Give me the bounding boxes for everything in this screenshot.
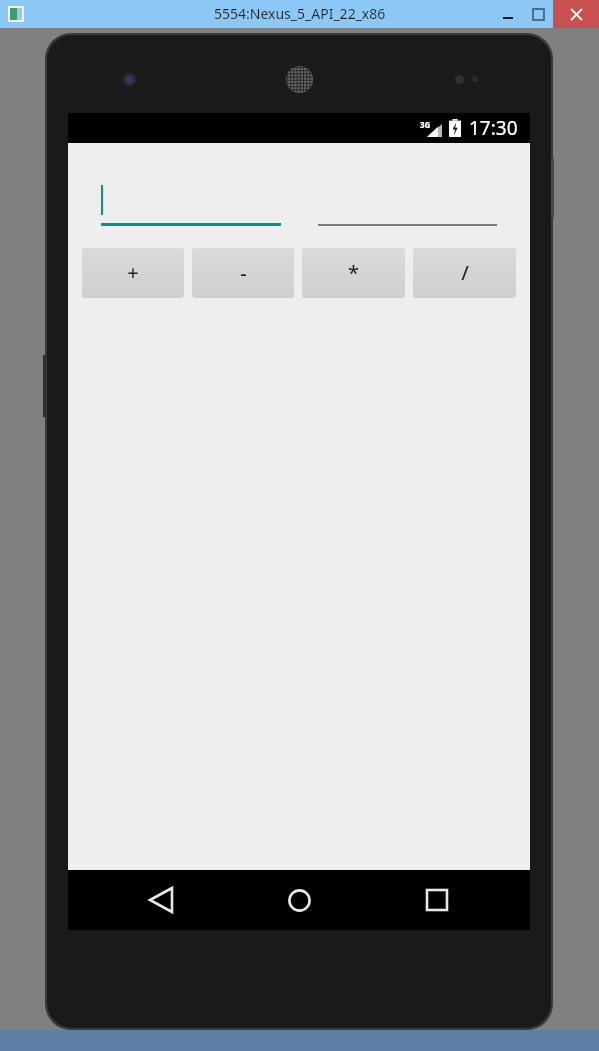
button[interactable]: -: [192, 248, 294, 296]
button[interactable]: Recent apps: [392, 870, 482, 930]
button[interactable]: Back: [116, 870, 206, 930]
button[interactable]: *: [302, 248, 405, 296]
staticText: *: [348, 259, 359, 286]
button[interactable]: +: [82, 248, 184, 296]
button[interactable]: Minimize: [493, 0, 523, 28]
staticText: -: [240, 259, 247, 286]
button[interactable]: First number input: [101, 181, 281, 229]
button[interactable]: Home: [254, 870, 344, 930]
staticText: /: [461, 259, 469, 286]
button[interactable]: Close: [553, 0, 599, 28]
staticText: +: [127, 259, 139, 286]
button[interactable]: /: [413, 248, 516, 296]
button[interactable]: Second number input: [318, 181, 497, 229]
staticText: 17:30: [469, 115, 518, 141]
button[interactable]: Maximize: [523, 0, 553, 28]
staticText: 3G: [420, 119, 431, 130]
staticText: 5554:Nexus_5_API_22_x86: [214, 4, 386, 23]
